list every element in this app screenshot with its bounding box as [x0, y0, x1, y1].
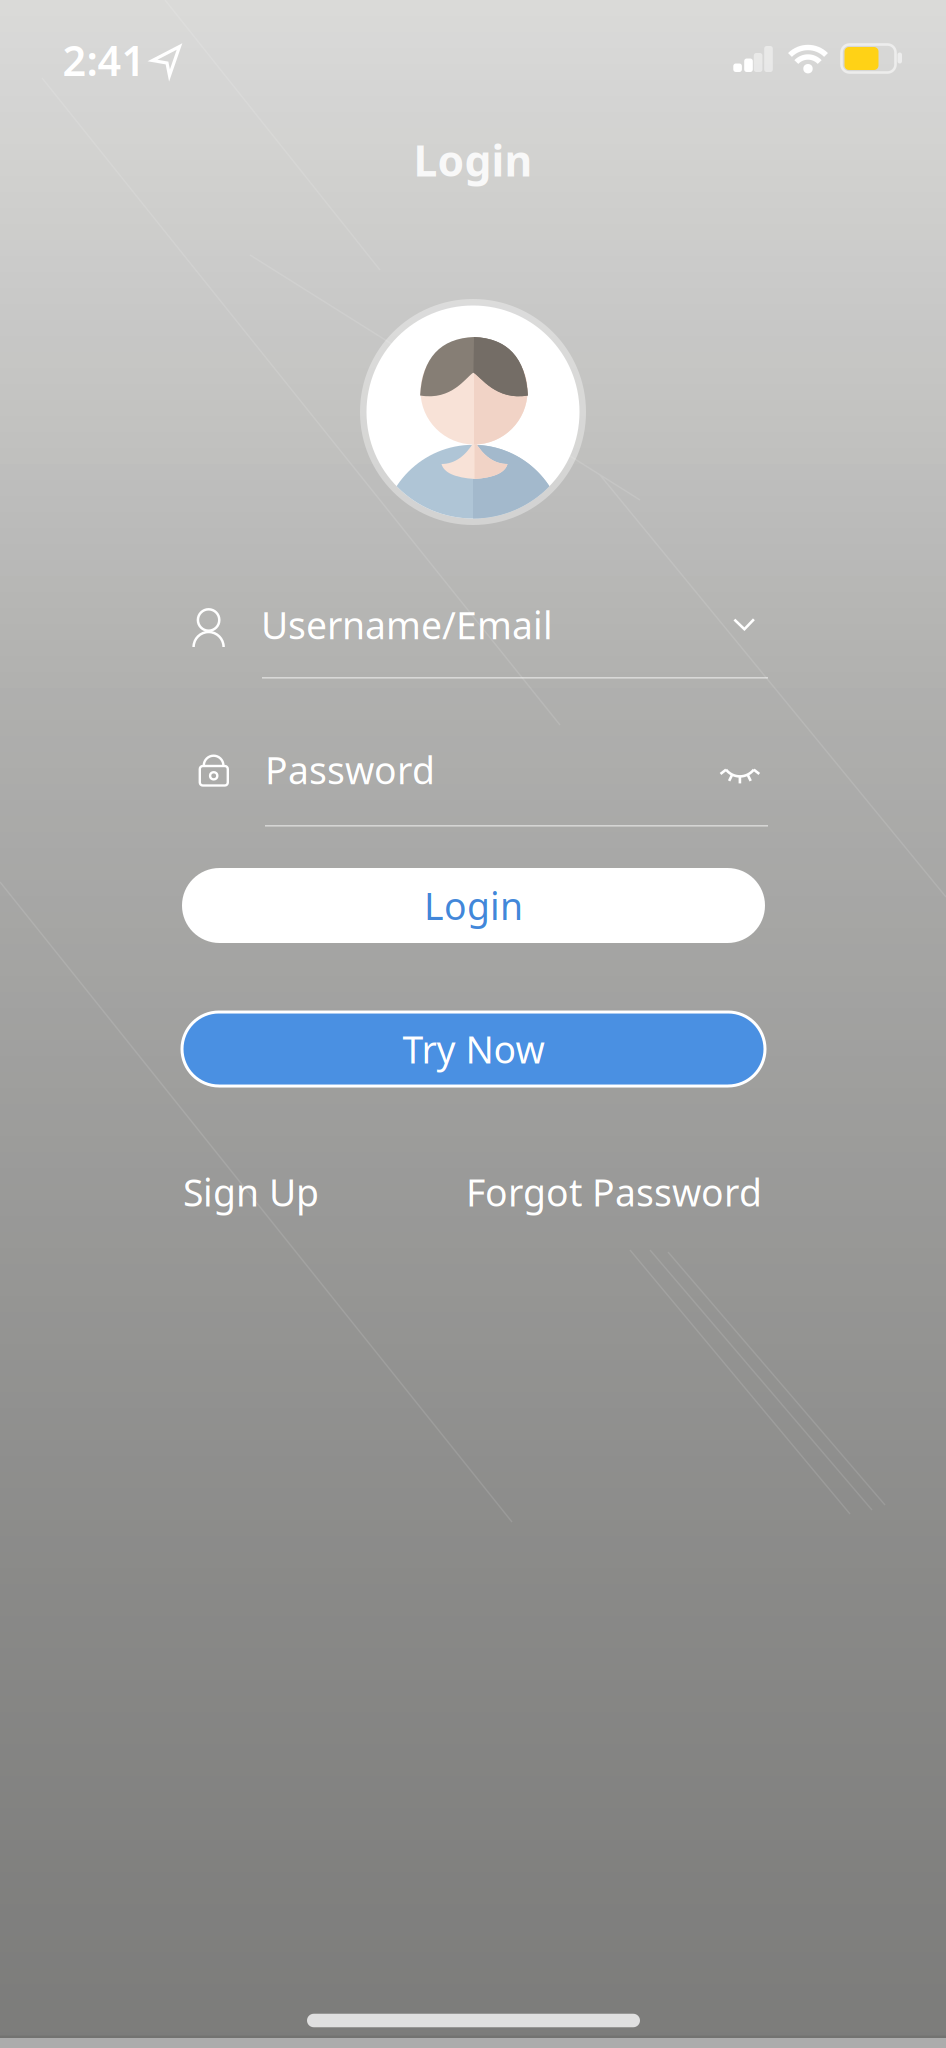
button[interactable]: Username/Email: [183, 592, 783, 688]
button[interactable]: Sign Up: [183, 1167, 319, 1217]
button[interactable]: Try Now: [182, 1012, 765, 1086]
button[interactable]: Forgot Password: [466, 1167, 762, 1217]
staticText: Username/Email: [261, 600, 553, 650]
staticText: Try Now: [402, 1024, 544, 1074]
staticText: Password: [265, 745, 435, 795]
staticText: Sign Up: [183, 1167, 319, 1217]
staticText: 2:41: [62, 33, 145, 87]
button[interactable]: Login: [182, 868, 765, 943]
button[interactable]: Password: [183, 728, 783, 838]
staticText: Login: [424, 881, 523, 930]
staticText: Login: [413, 132, 532, 188]
staticText: Forgot Password: [466, 1167, 762, 1217]
